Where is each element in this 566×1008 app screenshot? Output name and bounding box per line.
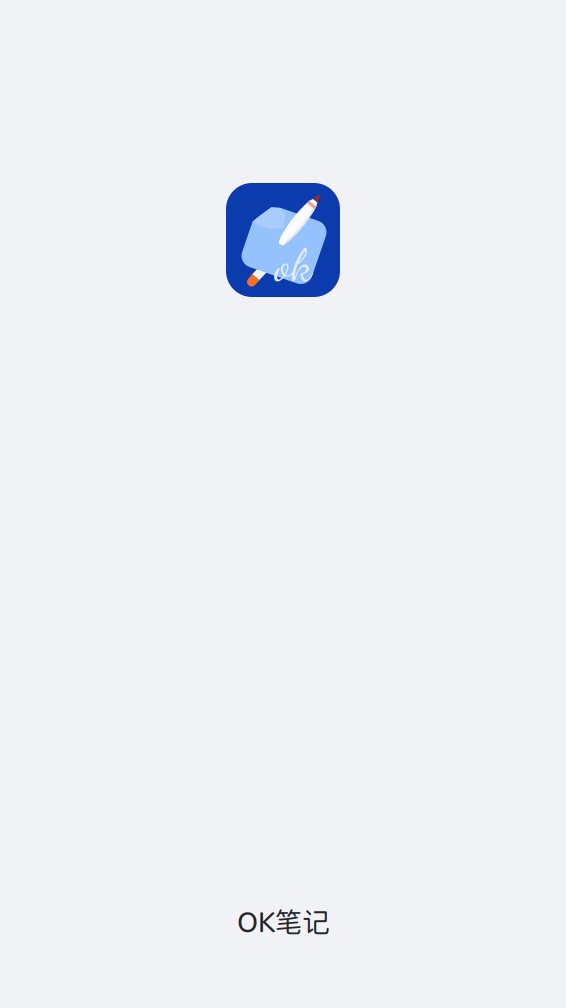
staticText: OK笔记 [237, 906, 329, 938]
staticText: ok [274, 238, 311, 292]
